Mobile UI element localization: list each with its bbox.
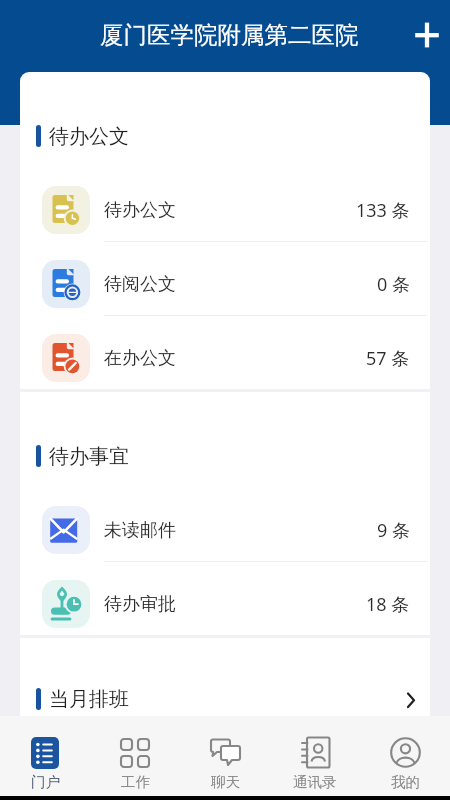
staticText: 工作 — [121, 773, 150, 791]
staticText: 待办事宜 — [49, 444, 129, 467]
staticText: 待办公文 — [104, 199, 176, 222]
staticText: 未读邮件 — [104, 519, 176, 542]
staticText: 待办公文 — [49, 124, 129, 147]
button[interactable]: 工作 — [90, 716, 180, 796]
staticText: 0 条 — [377, 272, 410, 297]
button[interactable]: 待办公文 — [20, 179, 430, 241]
button[interactable]: 门户 — [0, 716, 90, 796]
staticText: 我的 — [391, 773, 420, 791]
staticText: 133 条 — [356, 198, 410, 223]
button[interactable]: 当月排班 — [20, 687, 430, 710]
button[interactable]: 待办审批 — [20, 573, 430, 635]
staticText: 57 条 — [366, 346, 410, 371]
staticText: 厦门医学院附属第二医院 — [100, 20, 359, 50]
staticText: 聊天 — [211, 773, 240, 791]
button[interactable]: 通讯录 — [270, 716, 360, 796]
staticText: 当月排班 — [49, 687, 129, 710]
staticText: 门户 — [31, 773, 60, 791]
button[interactable]: 聊天 — [180, 716, 270, 796]
button[interactable]: 我的 — [360, 716, 450, 796]
button[interactable]: 在办公文 — [20, 327, 430, 389]
staticText: 在办公文 — [104, 347, 176, 370]
button[interactable]: 待阅公文 — [20, 253, 430, 315]
other: 展开 — [400, 689, 420, 709]
button[interactable]: 未读邮件 — [20, 499, 430, 561]
staticText: 9 条 — [377, 518, 410, 543]
staticText: 待办审批 — [104, 593, 176, 616]
button[interactable]: 添加 — [414, 22, 440, 48]
staticText: 18 条 — [366, 592, 410, 617]
staticText: 待阅公文 — [104, 273, 176, 296]
staticText: 通讯录 — [293, 773, 337, 791]
